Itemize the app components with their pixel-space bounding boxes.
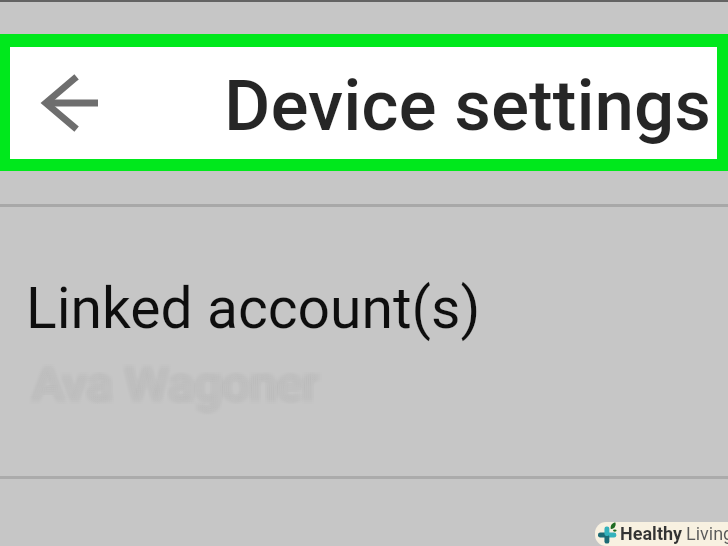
- button[interactable]: Linked account(s): [0, 207, 728, 476]
- staticText: Living: [686, 523, 728, 544]
- staticText: Ava Wagoner: [32, 357, 320, 414]
- staticText: Ava Wagoner: [36, 359, 324, 416]
- staticText: Ava Wagoner: [30, 359, 318, 416]
- staticText: Ava Wagoner: [28, 357, 316, 414]
- staticText: Linked account(s): [26, 275, 481, 342]
- staticText: Ava Wagoner: [34, 353, 322, 410]
- staticText: Ava Wagoner: [32, 355, 320, 412]
- staticText: Ava Wagoner: [34, 357, 322, 414]
- staticText: Ava Wagoner: [32, 359, 320, 416]
- staticText: Ava Wagoner: [30, 353, 318, 410]
- staticText: Ava Wagoner: [36, 355, 324, 412]
- staticText: Healthy: [620, 523, 683, 544]
- staticText: Ava Wagoner: [32, 353, 320, 410]
- staticText: Ava Wagoner: [36, 357, 324, 414]
- button[interactable]: Navigate up: [18, 47, 122, 159]
- staticText: Ava Wagoner: [28, 353, 316, 410]
- staticText: Ava Wagoner: [34, 359, 322, 416]
- staticText: Ava Wagoner: [28, 355, 316, 412]
- staticText: Ava Wagoner: [36, 353, 324, 410]
- staticText: Ava Wagoner: [30, 355, 318, 412]
- staticText: Ava Wagoner: [30, 357, 318, 414]
- staticText: Ava Wagoner: [28, 359, 316, 416]
- staticText: Device settings: [224, 64, 711, 147]
- staticText: Ava Wagoner: [34, 355, 322, 412]
